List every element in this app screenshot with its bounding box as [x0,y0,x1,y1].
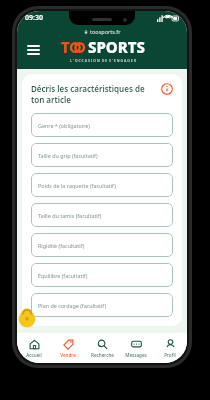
button[interactable]: Vendre [51,336,85,361]
staticText: Rigidité (facultatif) [38,242,85,249]
button[interactable]: Information [161,83,173,95]
button[interactable]: Plan de cordage (facultatif) [31,293,173,317]
button[interactable]: Accueil [17,336,51,361]
button[interactable]: Recherche [85,336,119,361]
staticText: Taille du tamis (facultatif) [38,212,102,219]
button[interactable]: Genre * (obligatoire) [31,113,173,137]
staticText: 09:30 [25,13,43,23]
button[interactable]: Équilibre (facultatif) [31,263,173,287]
staticText: Messages [125,352,147,358]
button[interactable]: Profil [153,336,187,361]
other: Secure [18,308,36,326]
staticText: SPORTS [88,37,145,57]
staticText: Décris les caractéristiques de ton artic… [31,83,145,106]
staticText: T [61,37,70,57]
staticText: L ' O C C A S I O N D E S ' E N G A G E … [70,58,137,63]
staticText: Vendre [60,352,76,358]
button[interactable]: Taille du grip (facultatif) [31,143,173,167]
button[interactable]: Taille du tamis (facultatif) [31,203,173,227]
staticText: Plan de cordage (facultatif) [38,302,107,309]
staticText: Profil [164,352,176,358]
staticText: Équilibre (facultatif) [38,272,88,279]
staticText: Taille du grip (facultatif) [38,152,98,159]
button[interactable]: Messages [119,336,153,361]
staticText: Poids de la raquette (facultatif) [38,182,116,189]
staticText: Recherche [91,352,114,358]
button[interactable]: Menu [23,40,43,60]
staticText: toosports.fr [90,28,121,35]
button[interactable]: Rigidité (facultatif) [31,233,173,257]
button[interactable]: Poids de la raquette (facultatif) [31,173,173,197]
staticText: Accueil [26,352,42,358]
staticText: Genre * (obligatoire) [38,122,90,129]
